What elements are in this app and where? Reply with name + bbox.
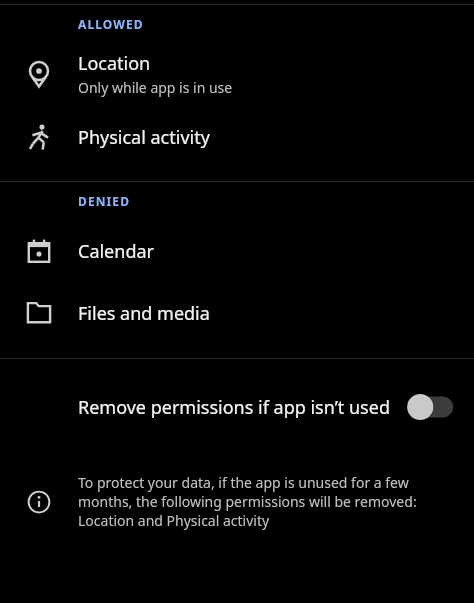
other: Physical activity permission xyxy=(0,105,78,169)
other: Location permission xyxy=(0,43,78,105)
staticText: DENIED xyxy=(78,193,131,209)
staticText: Physical activity xyxy=(78,125,210,150)
staticText: Files and media xyxy=(78,301,210,326)
button[interactable]: Remove permissions if app isn’t used xyxy=(0,359,474,455)
staticText: Remove permissions if app isn’t used xyxy=(78,395,390,420)
other: Remove permissions toggle xyxy=(404,390,460,424)
button[interactable]: Calendar permission xyxy=(0,220,474,282)
staticText: Calendar xyxy=(78,239,154,264)
button[interactable]: Location permission xyxy=(0,43,474,105)
other: Files and media permission xyxy=(0,282,78,344)
button[interactable]: Physical activity permission xyxy=(0,105,474,169)
staticText: Only while app is in use xyxy=(78,78,233,97)
staticText: ALLOWED xyxy=(78,16,144,32)
button[interactable]: Files and media permission xyxy=(0,282,474,344)
other: Calendar permission xyxy=(0,220,78,282)
staticText: Location xyxy=(78,51,151,76)
staticText: To protect your data, if the app is unus… xyxy=(78,473,466,530)
